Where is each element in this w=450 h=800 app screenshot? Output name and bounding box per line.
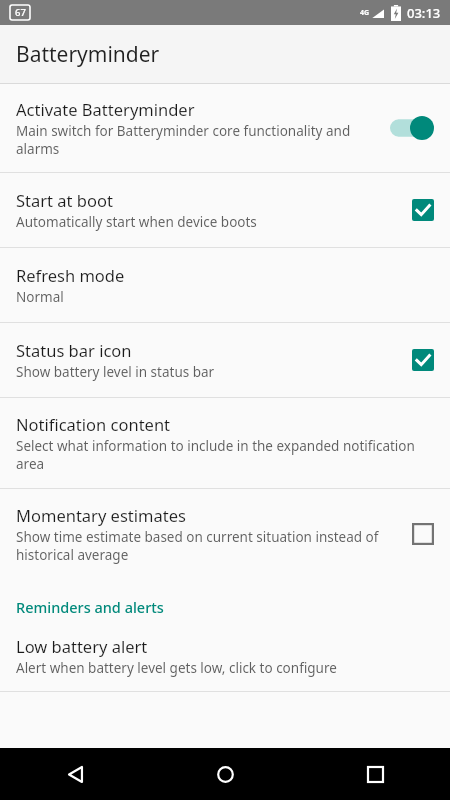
- staticText: Normal: [16, 288, 64, 306]
- staticText: Status bar icon: [16, 339, 132, 361]
- staticText: Show battery level in status bar: [16, 363, 215, 381]
- staticText: Automatically start when device boots: [16, 213, 257, 231]
- staticText: Activate Batteryminder: [16, 98, 195, 120]
- staticText: Alert when battery level gets low, click…: [16, 659, 337, 677]
- button[interactable]: Status bar icon: [0, 323, 450, 397]
- button[interactable]: Momentary estimates: [0, 489, 450, 579]
- button[interactable]: Activate Batteryminder switch: [0, 84, 450, 172]
- staticText: Low battery alert: [16, 635, 148, 657]
- button[interactable]: Low battery alert: [0, 629, 450, 691]
- button[interactable]: Home: [150, 748, 300, 800]
- button[interactable]: Notification content: [0, 398, 450, 488]
- button[interactable]: Refresh mode: [0, 248, 450, 322]
- button[interactable]: Back: [0, 748, 150, 800]
- button[interactable]: Start at boot: [0, 173, 450, 247]
- button[interactable]: Recent apps: [300, 748, 450, 800]
- staticText: Notification content: [16, 413, 171, 435]
- staticText: Refresh mode: [16, 264, 125, 286]
- staticText: 4G: [360, 8, 370, 18]
- staticText: 67: [15, 6, 26, 19]
- staticText: Main switch for Batteryminder core funct…: [16, 122, 378, 158]
- staticText: Momentary estimates: [16, 504, 186, 526]
- staticText: 03:13: [407, 4, 441, 22]
- staticText: Reminders and alerts: [16, 597, 164, 617]
- staticText: Select what information to include in th…: [16, 437, 422, 473]
- staticText: Start at boot: [16, 189, 113, 211]
- staticText: Batteryminder: [16, 40, 160, 69]
- staticText: Show time estimate based on current situ…: [16, 528, 400, 564]
